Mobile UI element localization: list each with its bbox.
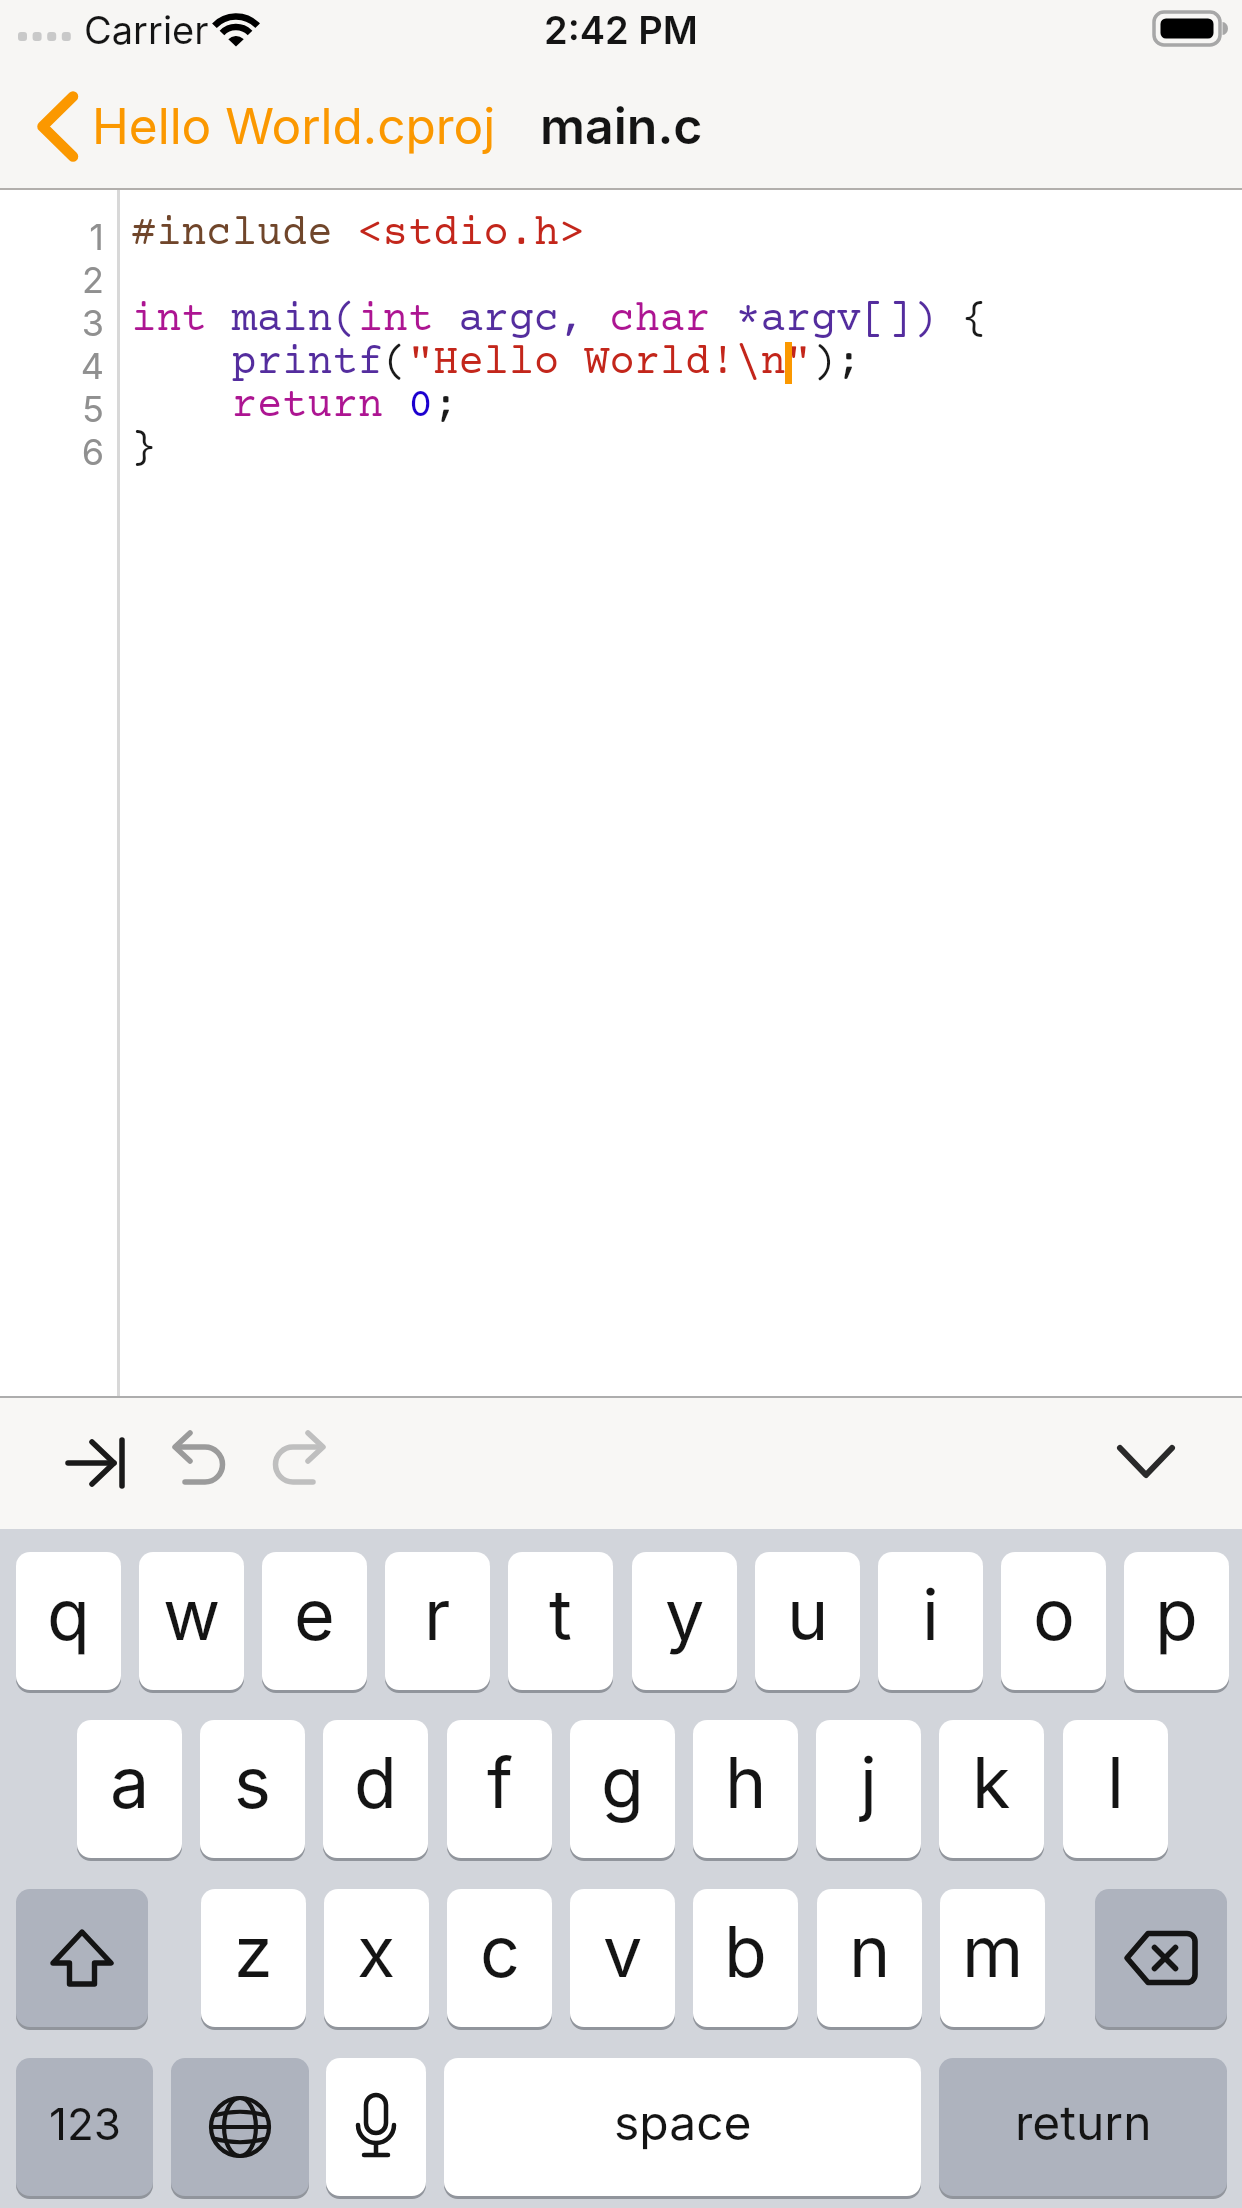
staticText: a	[110, 1740, 150, 1825]
staticText: e	[294, 1572, 335, 1657]
staticText: p	[1155, 1572, 1198, 1657]
staticText: 123	[49, 2097, 121, 2150]
button[interactable]: f	[447, 1720, 552, 1858]
button[interactable]: d	[323, 1720, 428, 1858]
button[interactable]: b	[693, 1889, 798, 2027]
button[interactable]: l	[1063, 1720, 1168, 1858]
staticText: k	[972, 1740, 1011, 1825]
button[interactable]	[262, 1426, 342, 1500]
button[interactable]: r	[385, 1552, 490, 1690]
button[interactable]: h	[693, 1720, 798, 1858]
button[interactable]	[56, 1426, 136, 1500]
staticText: s	[234, 1740, 271, 1825]
button[interactable]: a	[77, 1720, 182, 1858]
button[interactable]: y	[632, 1552, 737, 1690]
button[interactable]: u	[755, 1552, 860, 1690]
staticText: main.c	[540, 96, 703, 156]
button[interactable]: i	[878, 1552, 983, 1690]
staticText: 2:42 PM	[544, 7, 698, 53]
staticText: y	[665, 1572, 705, 1657]
button[interactable]: x	[324, 1889, 429, 2027]
button[interactable]	[1108, 1426, 1188, 1500]
button[interactable]: j	[816, 1720, 921, 1858]
button[interactable]	[16, 1889, 148, 2027]
staticText: space	[614, 2093, 752, 2151]
button[interactable]: c	[447, 1889, 552, 2027]
staticText: Carrier	[84, 7, 209, 53]
staticText: d	[354, 1740, 397, 1825]
button[interactable]: s	[200, 1720, 305, 1858]
button[interactable]: o	[1001, 1552, 1106, 1690]
staticText: t	[549, 1572, 572, 1657]
staticText: #include <stdio.h> int main(int argc, ch…	[131, 214, 988, 472]
staticText: g	[601, 1740, 644, 1825]
staticText: f	[487, 1740, 513, 1825]
staticText: v	[603, 1909, 643, 1994]
button[interactable]: t	[508, 1552, 613, 1690]
button[interactable]: k	[939, 1720, 1044, 1858]
button[interactable]	[160, 1426, 240, 1500]
button[interactable]	[1095, 1889, 1227, 2027]
staticText: u	[787, 1572, 829, 1657]
staticText: i	[922, 1572, 939, 1657]
button[interactable]	[171, 2058, 309, 2196]
button[interactable]: g	[570, 1720, 675, 1858]
button[interactable]: p	[1124, 1552, 1229, 1690]
staticText: Hello World.cproj	[92, 96, 496, 156]
staticText: b	[724, 1909, 767, 1994]
staticText: r	[424, 1572, 451, 1657]
staticText: q	[47, 1572, 90, 1657]
staticText: j	[860, 1740, 877, 1825]
button[interactable]: e	[262, 1552, 367, 1690]
staticText: l	[1107, 1740, 1124, 1825]
button[interactable]: z	[201, 1889, 306, 2027]
button[interactable]	[326, 2058, 426, 2196]
button[interactable]: v	[570, 1889, 675, 2027]
button[interactable]: Hello World.cproj	[36, 88, 440, 164]
staticText: return	[1015, 2093, 1152, 2151]
button[interactable]: n	[817, 1889, 922, 2027]
button[interactable]: 123	[16, 2058, 153, 2196]
staticText: 1 2 3 4 5 6	[0, 216, 104, 474]
button[interactable]: w	[139, 1552, 244, 1690]
staticText: n	[849, 1909, 891, 1994]
staticText: m	[962, 1909, 1024, 1994]
staticText: o	[1033, 1572, 1075, 1657]
button[interactable]: m	[940, 1889, 1045, 2027]
staticText: h	[725, 1740, 767, 1825]
button[interactable]: return	[939, 2058, 1227, 2196]
staticText: x	[357, 1909, 396, 1994]
staticText: c	[480, 1909, 520, 1994]
staticText: w	[163, 1572, 221, 1657]
button[interactable]: space	[444, 2058, 921, 2196]
button[interactable]: q	[16, 1552, 121, 1690]
staticText: z	[234, 1909, 273, 1994]
